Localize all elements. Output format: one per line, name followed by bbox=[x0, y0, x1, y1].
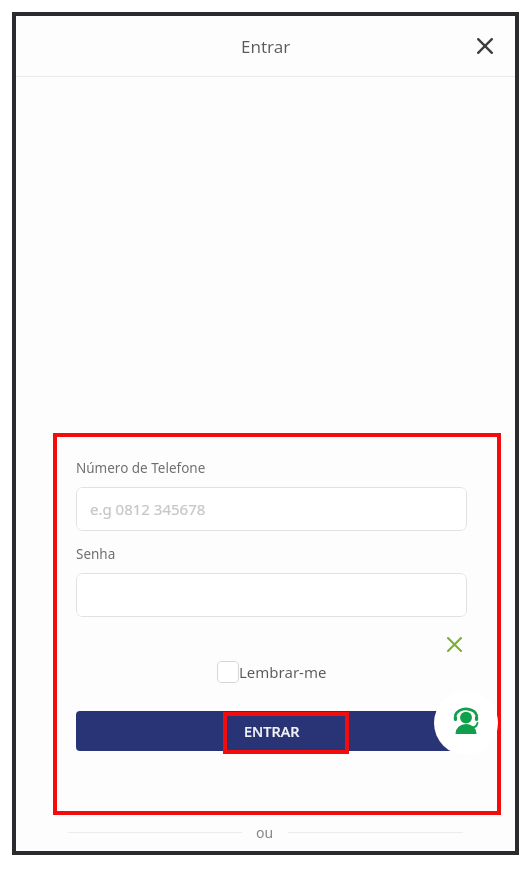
staticText: Número de Telefone bbox=[76, 459, 206, 477]
staticText: e.g 0812 345678 bbox=[90, 499, 206, 519]
button[interactable]: Suporte bbox=[434, 691, 498, 755]
staticText: Entrar bbox=[241, 35, 291, 58]
staticText: Lembrar-me bbox=[239, 662, 327, 682]
button[interactable]: Fechar bbox=[463, 24, 507, 68]
button[interactable]: ENTRAR bbox=[76, 711, 467, 751]
staticText: ou bbox=[256, 823, 274, 842]
staticText: ENTRAR bbox=[244, 721, 300, 741]
staticText: Senha bbox=[76, 545, 116, 563]
button[interactable]: e.g 0812 345678 bbox=[76, 487, 467, 531]
button[interactable] bbox=[76, 573, 467, 617]
button[interactable]: Fechar chat bbox=[441, 631, 467, 657]
button[interactable]: Lembrar-me bbox=[217, 661, 327, 683]
